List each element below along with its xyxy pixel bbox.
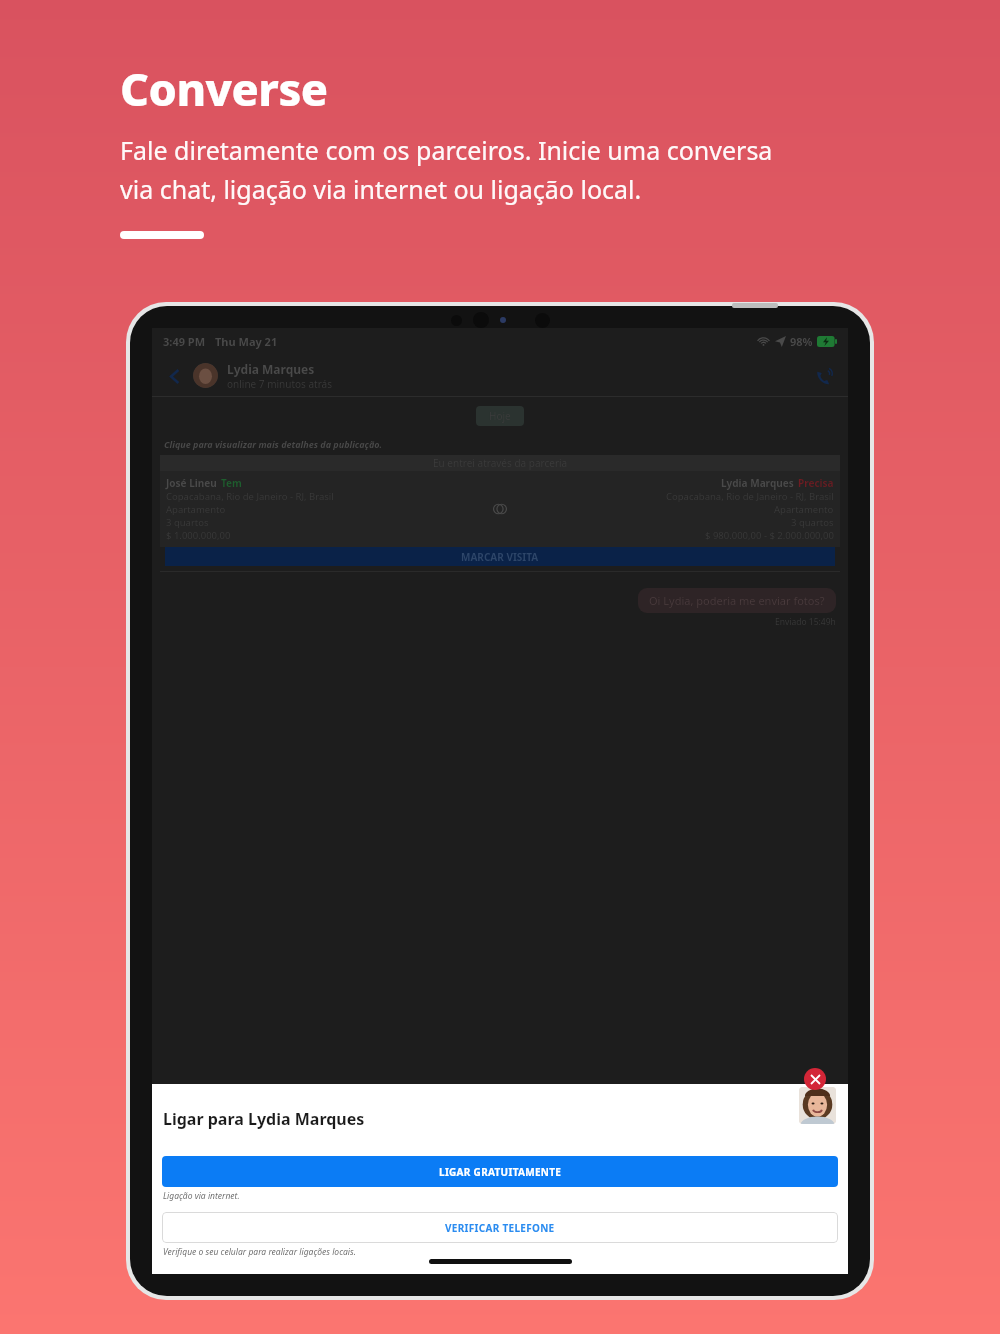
button[interactable]: Eu entrei através da parceria bbox=[160, 455, 840, 572]
staticText: Copacabana, Rio de Janeiro - RJ, Brasil bbox=[666, 490, 834, 503]
button[interactable]: Voltar bbox=[162, 363, 188, 389]
staticText: Oi Lydia, poderia me enviar fotos? bbox=[649, 593, 825, 608]
button[interactable]: LIGAR GRATUITAMENTE bbox=[162, 1156, 838, 1187]
staticText: Ligação via internet. bbox=[163, 1190, 240, 1202]
staticText: $ 1.000.000,00 bbox=[166, 529, 231, 542]
button[interactable]: Ligar bbox=[810, 362, 838, 390]
staticText: Fale diretamente com os parceiros. Inici… bbox=[120, 133, 773, 167]
staticText: Enviado 15:49h bbox=[775, 616, 836, 628]
staticText: VERIFICAR TELEFONE bbox=[445, 1221, 555, 1235]
staticText: online 7 minutos atrás bbox=[227, 377, 333, 391]
staticText: 3 quartos bbox=[791, 516, 834, 529]
staticText: Apartamento bbox=[774, 503, 834, 516]
staticText: Lydia Marques bbox=[721, 476, 794, 490]
staticText: Eu entrei através da parceria bbox=[433, 456, 568, 470]
button[interactable]: Fechar bbox=[804, 1068, 826, 1090]
staticText: LIGAR GRATUITAMENTE bbox=[439, 1165, 562, 1179]
staticText: Copacabana, Rio de Janeiro - RJ, Brasil bbox=[166, 490, 334, 503]
staticText: Converse bbox=[120, 58, 328, 119]
staticText: 3 quartos bbox=[166, 516, 209, 529]
staticText: MARCAR VISITA bbox=[461, 550, 539, 564]
button[interactable]: VERIFICAR TELEFONE bbox=[162, 1212, 838, 1243]
staticText: Verifique o seu celular para realizar li… bbox=[163, 1246, 356, 1258]
staticText: Clique para visualizar mais detalhes da … bbox=[164, 438, 383, 450]
staticText: 3:49 PM bbox=[163, 334, 206, 349]
staticText: via chat, ligação via internet ou ligaçã… bbox=[120, 172, 642, 206]
staticText: Apartamento bbox=[166, 503, 226, 516]
staticText: Thu May 21 bbox=[215, 334, 278, 349]
staticText: 98% bbox=[790, 334, 813, 349]
staticText: Precisa bbox=[798, 476, 834, 490]
staticText: José Lineu bbox=[166, 476, 217, 490]
staticText: Tem bbox=[221, 476, 242, 490]
staticText: Lydia Marques bbox=[227, 361, 315, 377]
staticText: Hoje bbox=[489, 409, 511, 423]
staticText: $ 980.000,00 - $ 2.000.000,00 bbox=[705, 529, 834, 542]
button[interactable]: MARCAR VISITA bbox=[165, 547, 835, 566]
staticText: Ligar para Lydia Marques bbox=[163, 1108, 365, 1130]
